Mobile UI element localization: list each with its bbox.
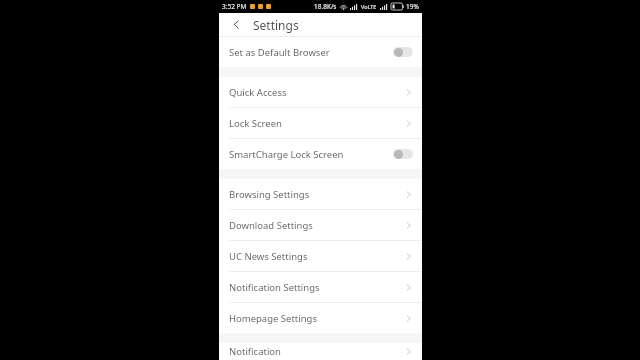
button[interactable]: Notification [219,343,422,360]
button[interactable]: Notification Settings [219,272,422,302]
staticText: 18.8K/s [314,2,337,11]
button[interactable]: Set as Default Browser [219,37,422,67]
button[interactable]: Download Settings [219,210,422,240]
staticText: Homepage Settings [229,312,404,325]
button[interactable]: SmartCharge Lock Screen [219,139,422,169]
staticText: SmartCharge Lock Screen [229,148,393,161]
staticText: Notification [229,345,404,358]
button[interactable]: Homepage Settings [219,303,422,333]
staticText: Quick Access [229,86,404,99]
staticText: Browsing Settings [229,188,404,201]
staticText: Set as Default Browser [229,46,393,59]
button[interactable]: Toggle [393,47,413,57]
button[interactable]: Back [219,13,253,36]
staticText: Settings [253,17,299,33]
staticText: Notification Settings [229,281,404,294]
staticText: 3:52 PM [222,2,247,11]
button[interactable]: Toggle [393,149,413,159]
button[interactable]: Browsing Settings [219,179,422,209]
button[interactable]: Lock Screen [219,108,422,138]
staticText: UC News Settings [229,250,404,263]
staticText: Download Settings [229,219,404,232]
staticText: 19% [406,2,419,11]
staticText: VoLTE [361,3,377,10]
staticText: Lock Screen [229,117,404,130]
button[interactable]: Quick Access [219,77,422,107]
button[interactable]: UC News Settings [219,241,422,271]
